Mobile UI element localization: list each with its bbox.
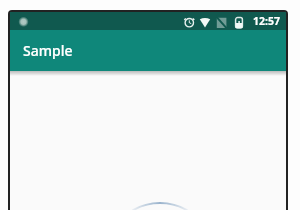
staticText: Sample: [23, 41, 73, 60]
staticText: 12:57: [253, 14, 280, 28]
